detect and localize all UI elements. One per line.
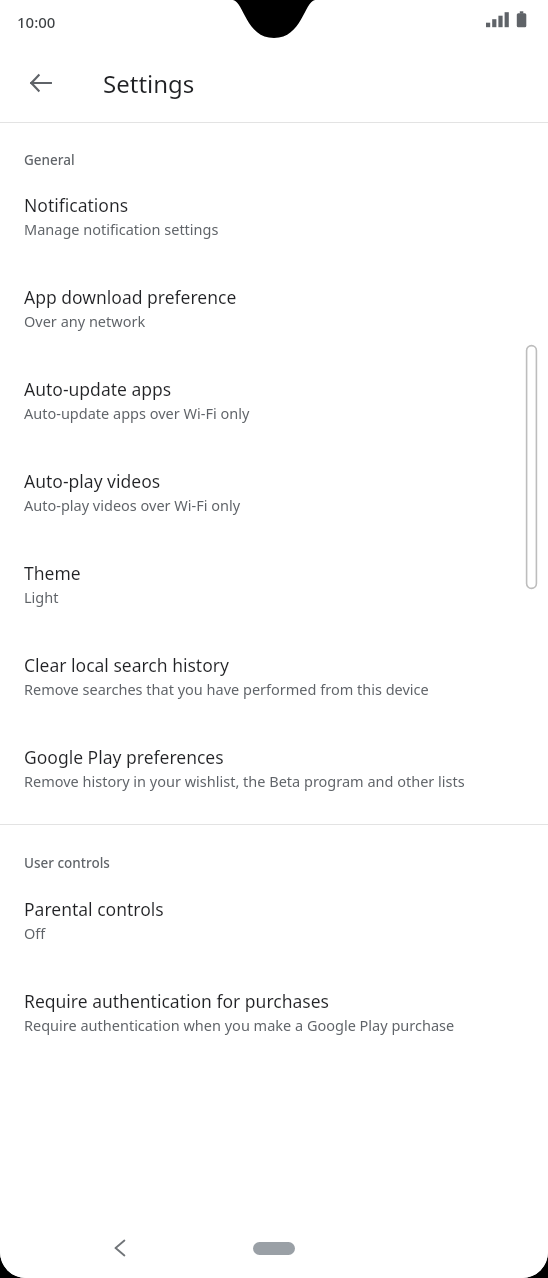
button[interactable]: Clear local search history bbox=[0, 653, 548, 699]
staticText: Remove history in your wishlist, the Bet… bbox=[24, 771, 465, 791]
button[interactable]: Home bbox=[246, 1237, 302, 1259]
staticText: Google Play preferences bbox=[24, 745, 224, 769]
staticText: Parental controls bbox=[24, 897, 164, 921]
button[interactable]: App download preference bbox=[0, 285, 548, 331]
staticText: Over any network bbox=[24, 311, 146, 331]
staticText: Auto-play videos over Wi-Fi only bbox=[24, 495, 241, 515]
staticText: General bbox=[24, 151, 75, 169]
staticText: Manage notification settings bbox=[24, 219, 219, 239]
staticText: Clear local search history bbox=[24, 653, 229, 677]
staticText: Auto-update apps bbox=[24, 377, 172, 401]
staticText: Auto-update apps over Wi-Fi only bbox=[24, 403, 250, 423]
staticText: Require authentication when you make a G… bbox=[24, 1015, 455, 1035]
button[interactable]: Require authentication for purchases bbox=[0, 989, 548, 1035]
staticText: Notifications bbox=[24, 193, 129, 217]
staticText: User controls bbox=[24, 854, 110, 872]
staticText: App download preference bbox=[24, 285, 237, 309]
button[interactable]: Auto-play videos bbox=[0, 469, 548, 515]
staticText: Light bbox=[24, 587, 59, 607]
button[interactable]: Auto-update apps bbox=[0, 377, 548, 423]
button[interactable]: Theme bbox=[0, 561, 548, 607]
button[interactable]: Parental controls bbox=[0, 897, 548, 943]
staticText: Auto-play videos bbox=[24, 469, 161, 493]
staticText: Off bbox=[24, 923, 46, 943]
staticText: Remove searches that you have performed … bbox=[24, 679, 429, 699]
staticText: 10:00 bbox=[17, 12, 56, 32]
button[interactable]: Back bbox=[96, 1224, 144, 1272]
button[interactable]: Back bbox=[16, 58, 66, 108]
button[interactable]: Google Play preferences bbox=[0, 745, 548, 791]
staticText: Theme bbox=[24, 561, 81, 585]
staticText: Settings bbox=[103, 67, 195, 100]
staticText: Require authentication for purchases bbox=[24, 989, 329, 1013]
button[interactable]: Notifications bbox=[0, 193, 548, 239]
